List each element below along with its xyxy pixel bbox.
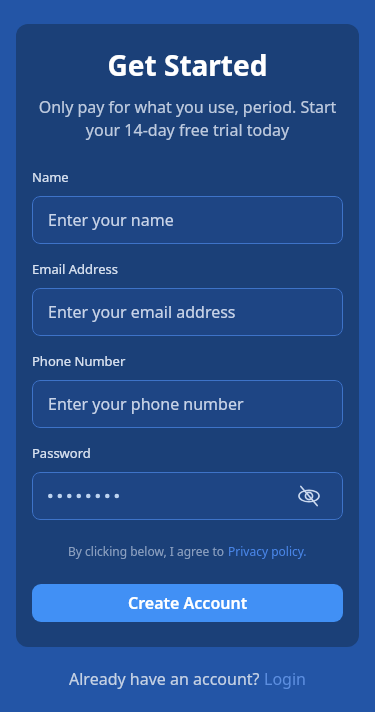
button[interactable]: Privacy policy. bbox=[228, 543, 307, 559]
button[interactable]: Enter your name bbox=[32, 196, 343, 244]
staticText: Create Account bbox=[128, 592, 248, 614]
staticText: Phone Number bbox=[32, 352, 126, 370]
staticText: Enter your name bbox=[48, 209, 174, 231]
button[interactable] bbox=[297, 484, 321, 508]
button[interactable]: Enter your email address bbox=[32, 288, 343, 336]
button[interactable] bbox=[32, 472, 343, 520]
staticText: Name bbox=[32, 168, 69, 186]
staticText: Get Started bbox=[32, 46, 343, 84]
button[interactable]: Create Account bbox=[32, 584, 343, 622]
staticText: Password bbox=[32, 444, 91, 462]
staticText: By clicking below, I agree to bbox=[68, 543, 228, 559]
staticText: Enter your phone number bbox=[48, 393, 244, 415]
staticText: Already have an account? bbox=[69, 668, 264, 690]
staticText: Email Address bbox=[32, 260, 118, 278]
staticText: Enter your email address bbox=[48, 301, 236, 323]
button[interactable]: Enter your phone number bbox=[32, 380, 343, 428]
staticText: Only pay for what you use, period. Start… bbox=[32, 96, 343, 141]
button[interactable]: Login bbox=[264, 668, 306, 690]
